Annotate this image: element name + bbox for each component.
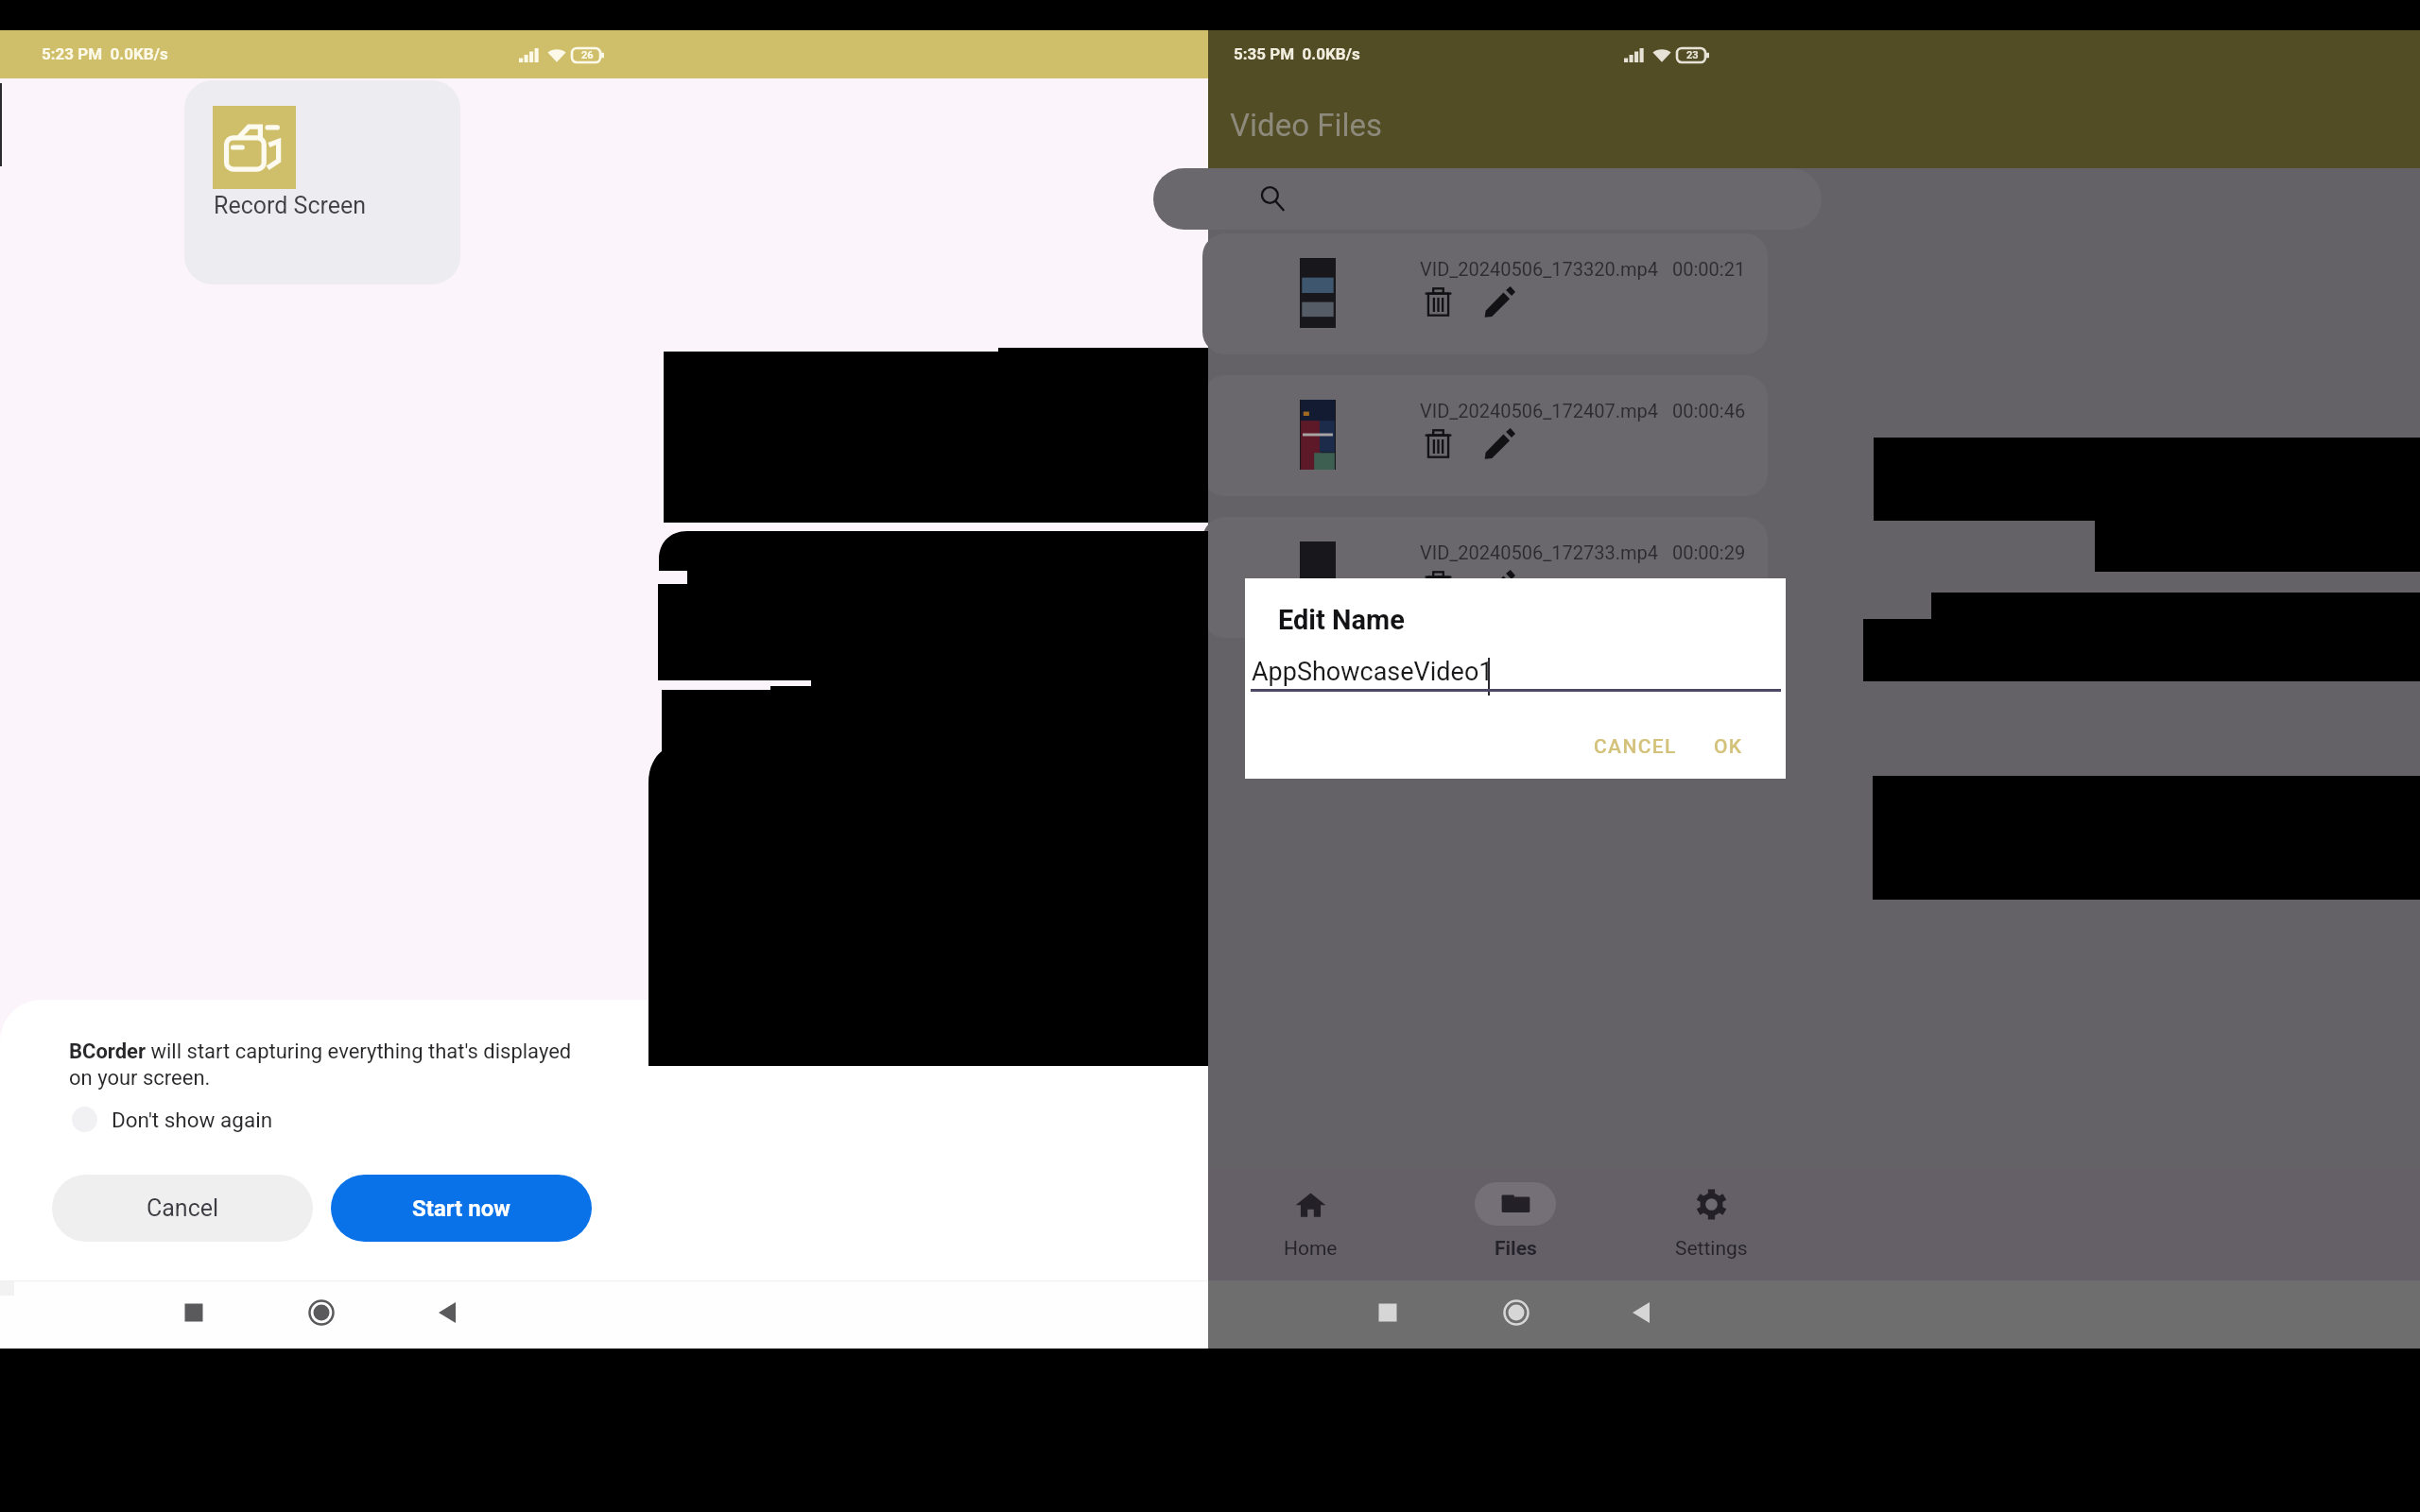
staticText: BCorder will start capturing everything … bbox=[69, 1039, 572, 1091]
button[interactable]: Cancel bbox=[52, 1175, 313, 1242]
staticText: Home bbox=[1284, 1237, 1338, 1261]
other: Home bbox=[1295, 1189, 1326, 1220]
staticText: Video Files bbox=[1230, 107, 1382, 144]
button[interactable]: Edit bbox=[1484, 570, 1515, 601]
staticText: Files bbox=[1495, 1237, 1537, 1261]
button[interactable]: CANCEL bbox=[1586, 730, 1685, 765]
staticText: 5:23 PM 0.0KB/s bbox=[42, 44, 168, 63]
button[interactable]: Delete bbox=[1423, 428, 1454, 459]
staticText: VID_20240506_173320.mp4 bbox=[1420, 258, 1658, 280]
other: Settings bbox=[1696, 1189, 1727, 1220]
staticText: 26 bbox=[581, 49, 594, 61]
button[interactable]: Delete bbox=[1423, 570, 1454, 601]
staticText: Start now bbox=[412, 1195, 510, 1222]
button[interactable]: Edit bbox=[1484, 286, 1515, 318]
other: Search bbox=[1260, 186, 1287, 213]
staticText: Cancel bbox=[147, 1194, 219, 1222]
button[interactable]: Start now bbox=[331, 1175, 592, 1242]
staticText: 00:00:21 bbox=[1672, 258, 1746, 280]
button[interactable]: Home bbox=[1259, 1182, 1361, 1261]
staticText: OK bbox=[1714, 735, 1743, 759]
staticText: VID_20240506_172733.mp4 bbox=[1420, 541, 1658, 563]
button[interactable]: VID_20240506_172407.mp4 bbox=[1202, 375, 1768, 496]
staticText: 23 bbox=[1686, 49, 1699, 61]
button[interactable]: Files bbox=[1464, 1182, 1566, 1261]
button[interactable]: Don't show again bbox=[72, 1107, 273, 1132]
button[interactable]: Edit bbox=[1484, 428, 1515, 459]
staticText: Record Screen bbox=[214, 192, 367, 219]
staticText: 00:00:46 bbox=[1672, 400, 1746, 421]
button[interactable]: Settings bbox=[1660, 1182, 1762, 1261]
staticText: Don't show again bbox=[112, 1108, 273, 1132]
staticText: AppShowcaseVideo1 bbox=[1252, 657, 1494, 687]
button[interactable]: Search bbox=[1153, 168, 1822, 230]
button[interactable]: Delete bbox=[1423, 286, 1454, 318]
staticText: VID_20240506_172407.mp4 bbox=[1420, 400, 1658, 421]
button[interactable]: VID_20240506_173320.mp4 bbox=[1202, 233, 1768, 354]
staticText: Settings bbox=[1675, 1237, 1748, 1261]
other: Files bbox=[1500, 1189, 1531, 1220]
button[interactable]: OK bbox=[1706, 730, 1751, 765]
staticText: CANCEL bbox=[1594, 735, 1677, 759]
button[interactable]: Record Screen bbox=[184, 80, 460, 284]
button[interactable]: VID_20240506_172733.mp4 bbox=[1202, 517, 1768, 638]
staticText: Edit Name bbox=[1278, 604, 1405, 636]
staticText: 5:35 PM 0.0KB/s bbox=[1234, 44, 1360, 63]
staticText: 00:00:29 bbox=[1672, 541, 1746, 563]
